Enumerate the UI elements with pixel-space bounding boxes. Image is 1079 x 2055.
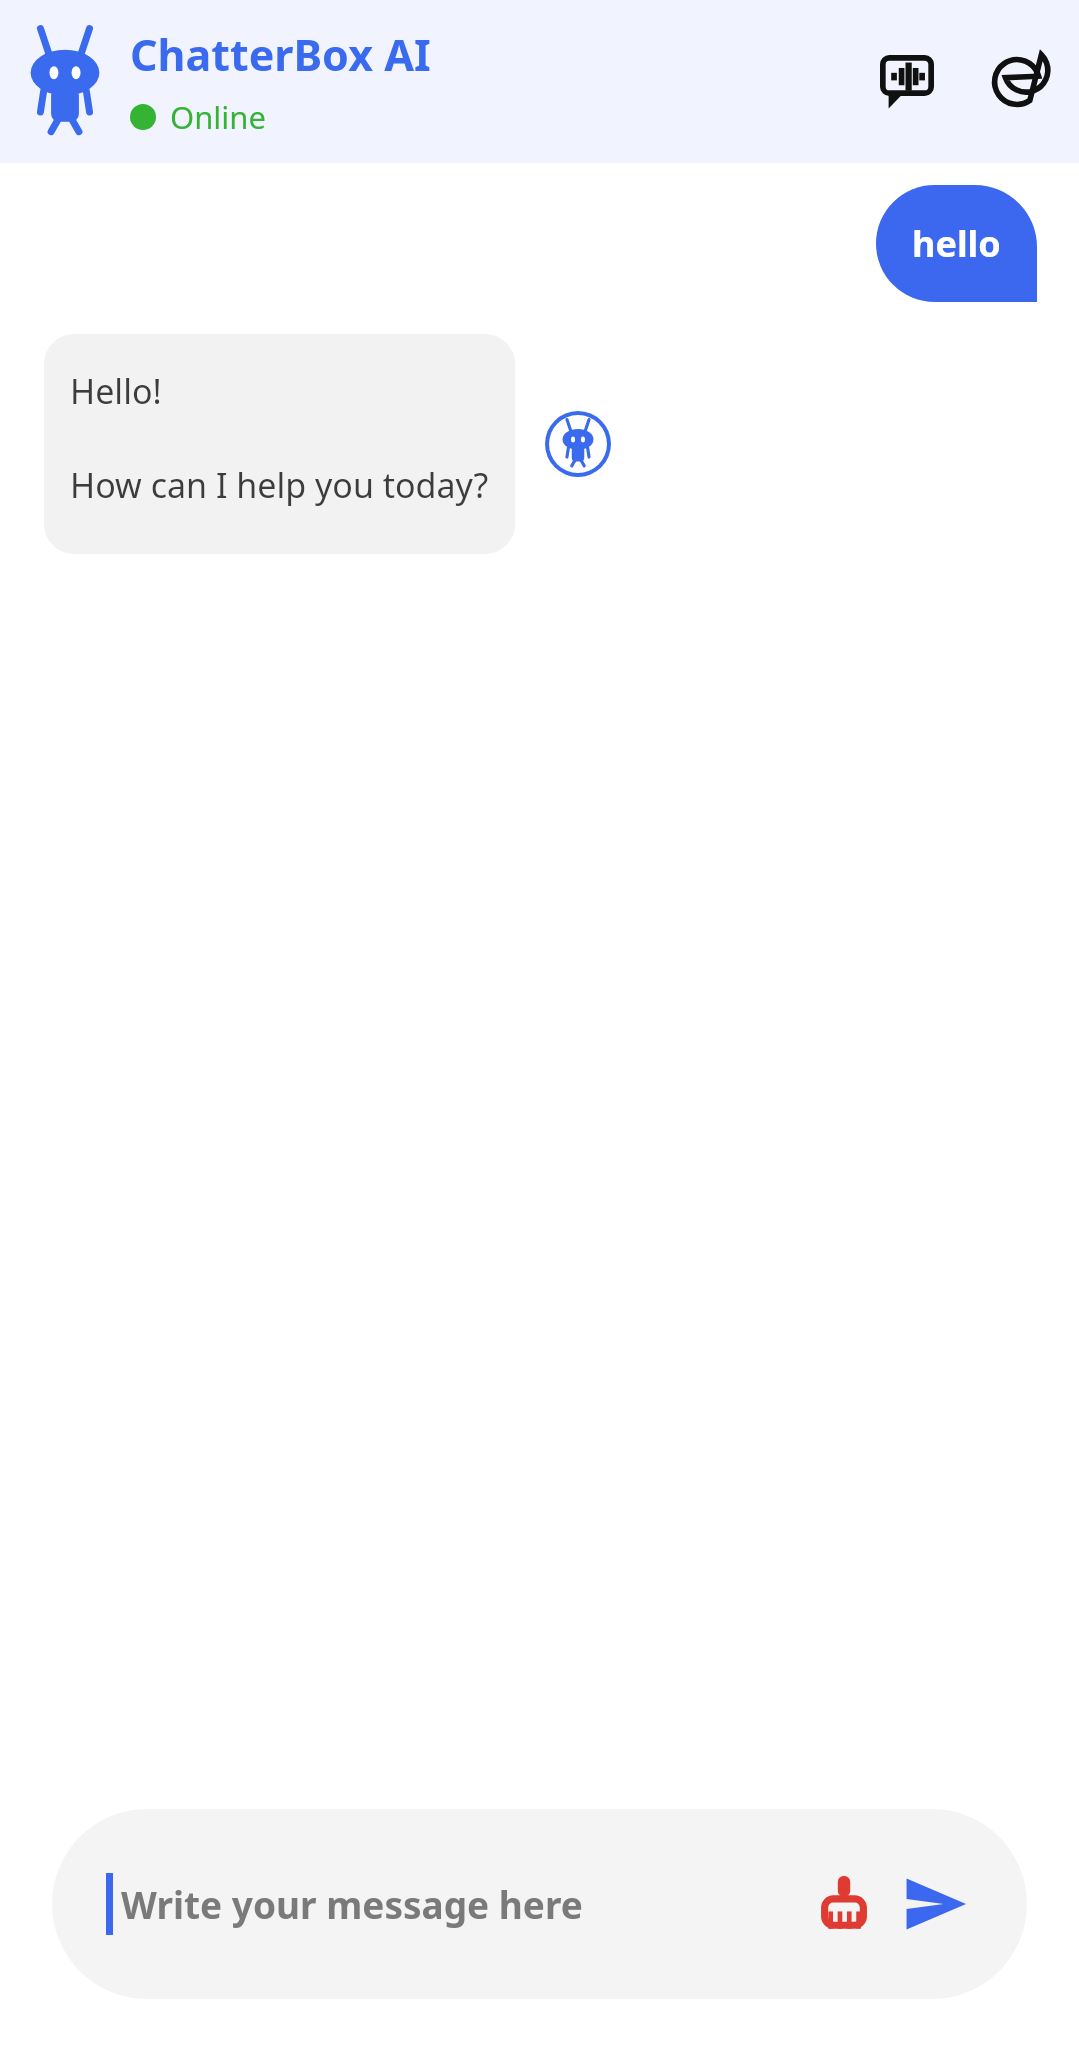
button[interactable]: Send xyxy=(897,1865,975,1943)
staticText: Write your message here xyxy=(121,1879,805,1929)
staticText: hello xyxy=(912,219,1001,268)
staticText: Online xyxy=(170,96,267,138)
staticText: How can I help you today? xyxy=(70,462,489,508)
button[interactable]: Write your message here xyxy=(52,1809,1027,1999)
staticText: ChatterBox AI xyxy=(130,25,431,84)
staticText: Hello! xyxy=(70,368,162,414)
button[interactable]: Hello! xyxy=(44,334,515,554)
button[interactable]: Clear chat xyxy=(805,1865,883,1943)
button[interactable]: hello xyxy=(876,185,1037,302)
button[interactable]: Dark mode xyxy=(981,46,1053,118)
button[interactable]: Voice chat xyxy=(871,46,943,118)
